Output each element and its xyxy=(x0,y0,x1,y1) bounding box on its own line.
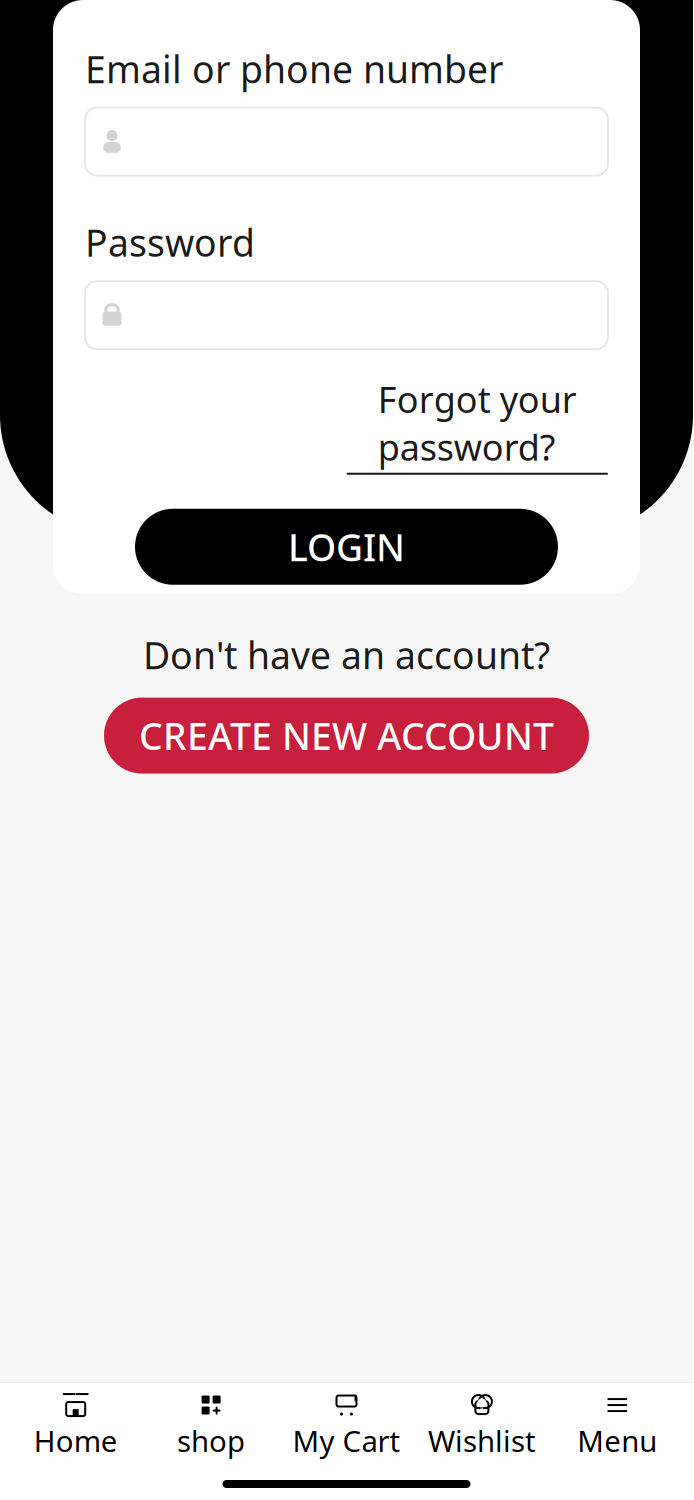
staticText: Email or phone number xyxy=(85,44,503,94)
button[interactable]: shop xyxy=(143,1383,279,1466)
staticText: LOGIN xyxy=(288,522,405,572)
staticText: Menu xyxy=(577,1421,657,1460)
staticText: 1 xyxy=(358,123,431,293)
button[interactable]: LOGIN xyxy=(135,509,558,585)
staticText: One xyxy=(203,146,489,337)
staticText: CREATE NEW ACCOUNT xyxy=(139,711,554,760)
button[interactable]: Wishlist xyxy=(414,1383,550,1466)
staticText: Password xyxy=(85,218,255,267)
button[interactable]: CREATE NEW ACCOUNT xyxy=(104,698,589,774)
button[interactable]: Forgot your password? xyxy=(346,371,608,479)
staticText: shop xyxy=(177,1421,245,1460)
staticText: My Cart xyxy=(292,1421,400,1460)
button[interactable]: Home xyxy=(8,1383,143,1466)
staticText: Wishlist xyxy=(428,1421,536,1460)
button[interactable]: My Cart xyxy=(279,1383,414,1466)
staticText: Let's get started xyxy=(160,301,533,361)
staticText: Forgot your password? xyxy=(378,375,577,471)
button[interactable]: Menu xyxy=(550,1383,685,1466)
staticText: Home xyxy=(34,1421,118,1460)
staticText: Don't have an account? xyxy=(143,630,550,680)
